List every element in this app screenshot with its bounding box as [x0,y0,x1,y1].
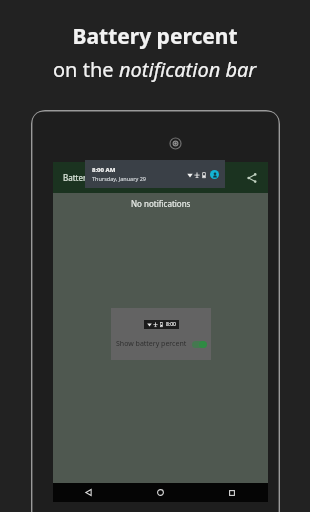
button[interactable]: User profile [210,170,219,179]
button[interactable]: Share [242,168,262,188]
staticText: on the [53,56,119,83]
staticText: Show battery percent [116,339,187,349]
button[interactable]: Recent apps [196,483,268,502]
button[interactable]: 8:00 AM [85,160,225,188]
staticText: 8:00 AM [92,166,116,174]
button[interactable]: Show battery percent [116,339,207,349]
staticText: notification bar [119,56,257,83]
button[interactable]: Home [124,483,196,502]
button[interactable]: 8:00 [111,308,211,360]
staticText: No notifications [131,198,191,209]
staticText: Battery percent [72,22,238,51]
button[interactable]: Back [53,483,124,502]
staticText: Thursday, January 29 [92,175,146,182]
staticText: Battery Percent [63,172,122,183]
staticText: 8:00 [166,321,176,328]
